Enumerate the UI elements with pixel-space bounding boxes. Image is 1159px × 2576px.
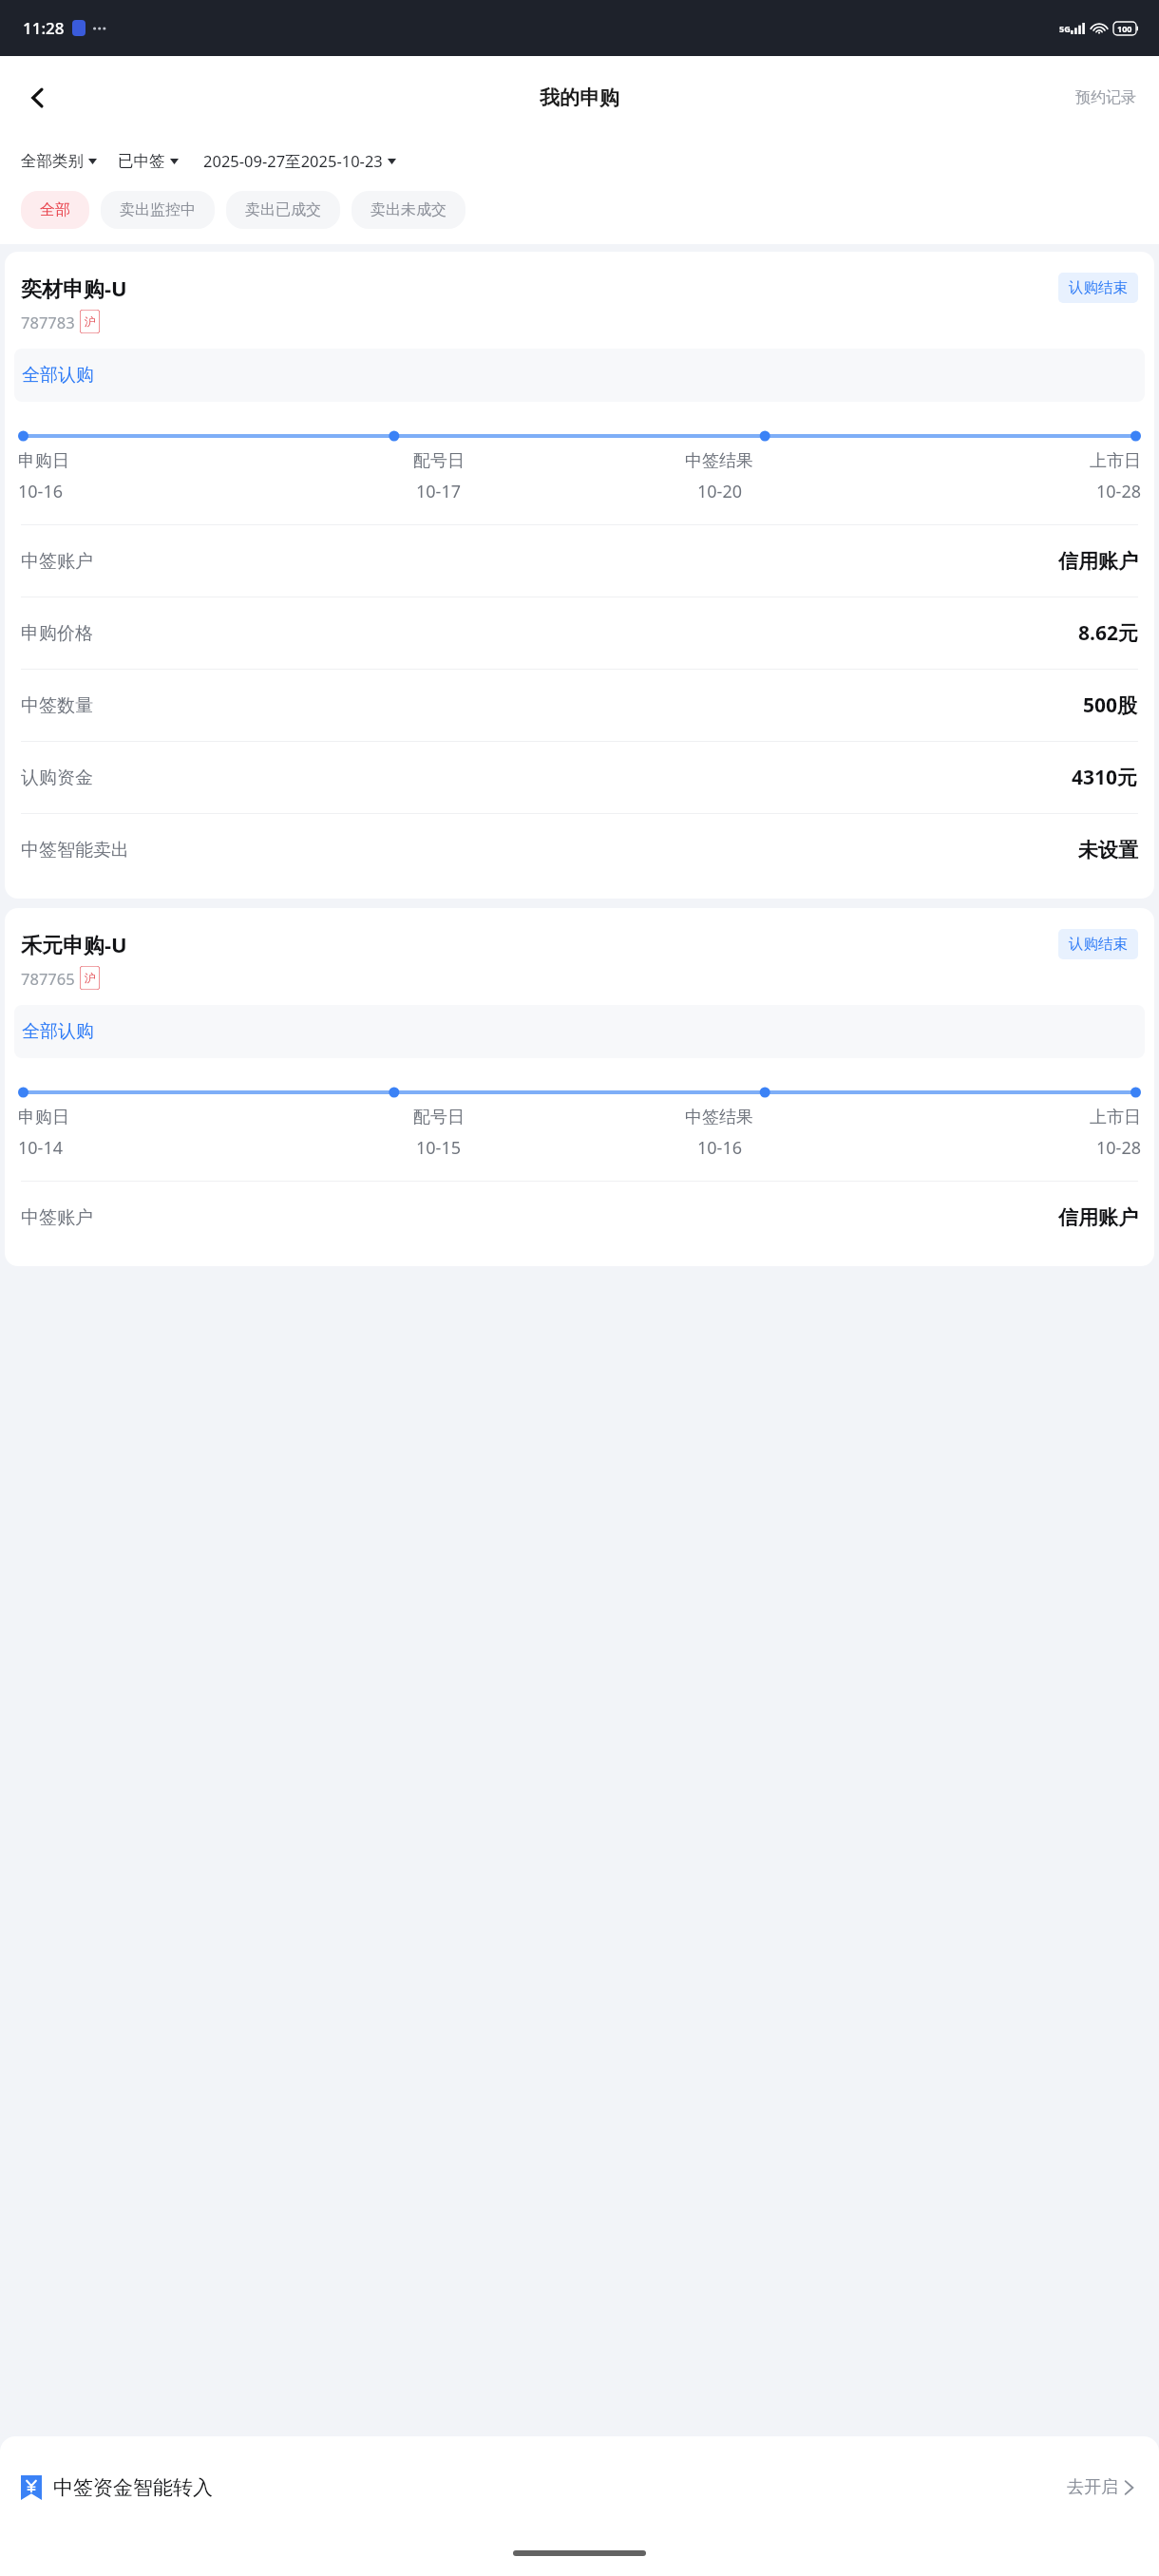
- staticText: 787765: [21, 968, 75, 989]
- staticText: 10-15: [416, 1136, 461, 1160]
- button[interactable]: 去开启: [1061, 2471, 1140, 2504]
- staticText: 5G: [1059, 23, 1071, 34]
- button[interactable]: 卖出已成交: [226, 191, 340, 229]
- staticText: 10-16: [697, 1136, 742, 1160]
- staticText: 全部类别: [21, 151, 84, 171]
- button[interactable]: 禾元申购-U: [5, 908, 1154, 1266]
- button[interactable]: Back: [11, 71, 65, 124]
- staticText: 认购资金: [21, 767, 93, 789]
- staticText: 10-17: [416, 480, 461, 503]
- staticText: 卖出监控中: [120, 200, 196, 219]
- button[interactable]: 全部: [21, 191, 89, 229]
- staticText: 中签资金智能转入: [53, 2475, 213, 2500]
- staticText: 未设置: [1078, 838, 1138, 862]
- staticText: 禾元申购-U: [21, 930, 127, 958]
- staticText: 500股: [1083, 691, 1138, 719]
- button[interactable]: 全部认购: [14, 1005, 1145, 1058]
- staticText: 申购日: [18, 1107, 69, 1128]
- button[interactable]: 奕材申购-U: [5, 252, 1154, 899]
- staticText: 配号日: [413, 1107, 465, 1128]
- staticText: 认购结束: [1069, 935, 1128, 954]
- staticText: 去开启: [1067, 2476, 1118, 2498]
- staticText: 沪: [85, 971, 96, 985]
- staticText: 认购结束: [1069, 278, 1128, 297]
- button[interactable]: 认购结束: [1058, 273, 1138, 303]
- button[interactable]: 卖出监控中: [101, 191, 215, 229]
- staticText: 中签账户: [21, 1206, 93, 1229]
- button[interactable]: 2025-09-27至2025-10-23: [203, 144, 396, 178]
- staticText: 全部认购: [22, 1020, 94, 1043]
- staticText: 2025-09-27至2025-10-23: [203, 150, 383, 172]
- staticText: 10-20: [697, 480, 742, 503]
- staticText: 信用账户: [1058, 549, 1138, 574]
- staticText: 中签智能卖出: [21, 839, 129, 862]
- staticText: 卖出未成交: [370, 200, 446, 219]
- staticText: 787783: [21, 312, 75, 332]
- staticText: 配号日: [413, 450, 465, 472]
- staticText: 卖出已成交: [245, 200, 321, 219]
- staticText: 8.62元: [1078, 619, 1138, 647]
- staticText: 全部: [40, 200, 70, 219]
- staticText: 全部认购: [22, 364, 94, 387]
- staticText: 申购价格: [21, 622, 93, 645]
- staticText: 上市日: [1090, 450, 1141, 472]
- staticText: 信用账户: [1058, 1205, 1138, 1230]
- staticText: 4310元: [1072, 764, 1138, 791]
- staticText: 中签结果: [685, 450, 753, 472]
- staticText: 10-28: [1096, 1136, 1141, 1160]
- staticText: 10-14: [18, 1136, 63, 1160]
- staticText: 10-28: [1096, 480, 1141, 503]
- staticText: 10-16: [18, 480, 63, 503]
- staticText: 我的申购: [540, 85, 619, 110]
- staticText: 中签账户: [21, 550, 93, 573]
- staticText: 中签结果: [685, 1107, 753, 1128]
- button[interactable]: 认购结束: [1058, 929, 1138, 959]
- button[interactable]: 预约记录: [1068, 81, 1144, 115]
- button[interactable]: 全部类别: [21, 145, 97, 177]
- staticText: 中签数量: [21, 694, 93, 717]
- staticText: 预约记录: [1075, 88, 1136, 107]
- button[interactable]: 卖出未成交: [351, 191, 465, 229]
- staticText: 已中签: [118, 151, 165, 171]
- staticText: 沪: [85, 314, 96, 329]
- button[interactable]: 全部认购: [14, 349, 1145, 402]
- button[interactable]: 中签资金智能转入: [0, 2436, 1159, 2538]
- button[interactable]: 已中签: [118, 145, 179, 177]
- staticText: 11:28: [23, 17, 65, 39]
- staticText: 上市日: [1090, 1107, 1141, 1128]
- staticText: 100: [1117, 23, 1132, 34]
- staticText: 奕材申购-U: [21, 274, 127, 302]
- staticText: 申购日: [18, 450, 69, 472]
